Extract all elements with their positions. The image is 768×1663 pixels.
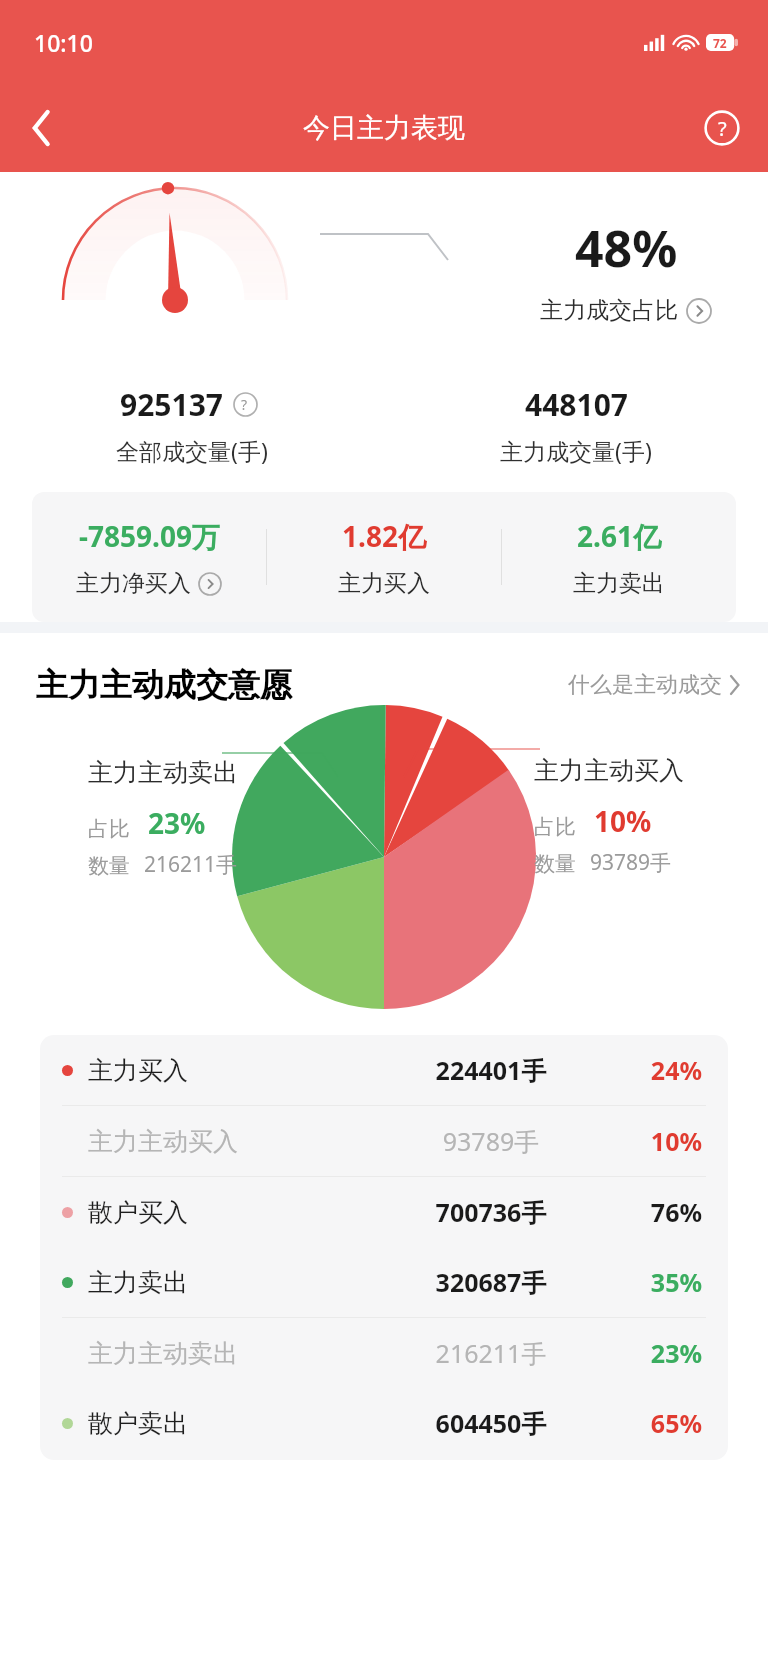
staticText: 10:10	[34, 27, 93, 58]
staticText: 65%	[606, 1406, 702, 1440]
staticText: 320687手	[376, 1265, 606, 1299]
staticText: 主力卖出	[573, 569, 665, 598]
staticText: 什么是主动成交	[568, 671, 722, 699]
staticText: 925137	[120, 384, 223, 425]
staticText: 72	[713, 35, 727, 51]
staticText: 占比	[534, 814, 576, 840]
button[interactable]: Help	[694, 100, 750, 156]
staticText: 224401手	[376, 1053, 606, 1087]
staticText: 主力买入	[338, 569, 430, 598]
staticText: ?	[718, 115, 727, 142]
button[interactable]: 2.61亿	[502, 492, 736, 622]
staticText: 24%	[606, 1053, 702, 1087]
button[interactable]: 主力主动买入	[40, 1106, 728, 1176]
staticText: 216211手	[144, 850, 238, 879]
staticText: -7859.09万	[79, 517, 220, 555]
staticText: 数量	[88, 853, 130, 879]
staticText: 10%	[594, 802, 652, 840]
staticText: 数量	[534, 851, 576, 877]
staticText: 35%	[606, 1265, 702, 1299]
staticText: 76%	[606, 1195, 702, 1229]
staticText: 主力成交量(手)	[500, 435, 652, 466]
staticText: 主力成交占比	[540, 296, 678, 325]
staticText: 散户卖出	[88, 1408, 188, 1439]
button[interactable]: 什么是主动成交	[568, 671, 740, 699]
staticText: 23%	[606, 1336, 702, 1370]
button[interactable]: 散户买入	[40, 1177, 728, 1247]
button[interactable]: 主力主动卖出	[40, 1318, 728, 1388]
staticText: 216211手	[376, 1336, 606, 1370]
staticText: 10%	[606, 1124, 702, 1158]
button[interactable]: 1.82亿	[267, 492, 501, 622]
button[interactable]: 主力买入	[40, 1035, 728, 1105]
staticText: 占比	[88, 816, 130, 842]
button[interactable]: Back	[14, 100, 70, 156]
staticText: 全部成交量(手)	[116, 435, 268, 466]
staticText: 448107	[525, 384, 628, 425]
staticText: 主力主动卖出	[88, 1338, 238, 1369]
staticText: 93789手	[590, 848, 672, 877]
button[interactable]: 925137	[0, 384, 384, 466]
button[interactable]: 主力卖出	[40, 1247, 728, 1317]
staticText: 散户买入	[88, 1197, 188, 1228]
staticText: 主力主动成交意愿	[36, 665, 292, 705]
staticText: 主力主动卖出	[88, 757, 238, 788]
staticText: 今日主力表现	[303, 111, 465, 145]
staticText: 48%	[575, 214, 678, 282]
staticText: 主力主动买入	[534, 755, 684, 786]
staticText: 主力主动买入	[88, 1126, 238, 1157]
button[interactable]: 散户卖出	[40, 1388, 728, 1458]
staticText: 主力买入	[88, 1055, 188, 1086]
staticText: 主力卖出	[88, 1267, 188, 1298]
staticText: 2.61亿	[577, 517, 661, 555]
staticText: 604450手	[376, 1406, 606, 1440]
button[interactable]: -7859.09万	[32, 492, 266, 622]
staticText: 1.82亿	[342, 517, 426, 555]
button[interactable]: 主力成交占比	[540, 296, 712, 325]
staticText: 93789手	[376, 1124, 606, 1158]
staticText: 23%	[148, 804, 206, 842]
staticText: ?	[241, 395, 248, 414]
staticText: 700736手	[376, 1195, 606, 1229]
staticText: 主力净买入	[76, 569, 191, 598]
